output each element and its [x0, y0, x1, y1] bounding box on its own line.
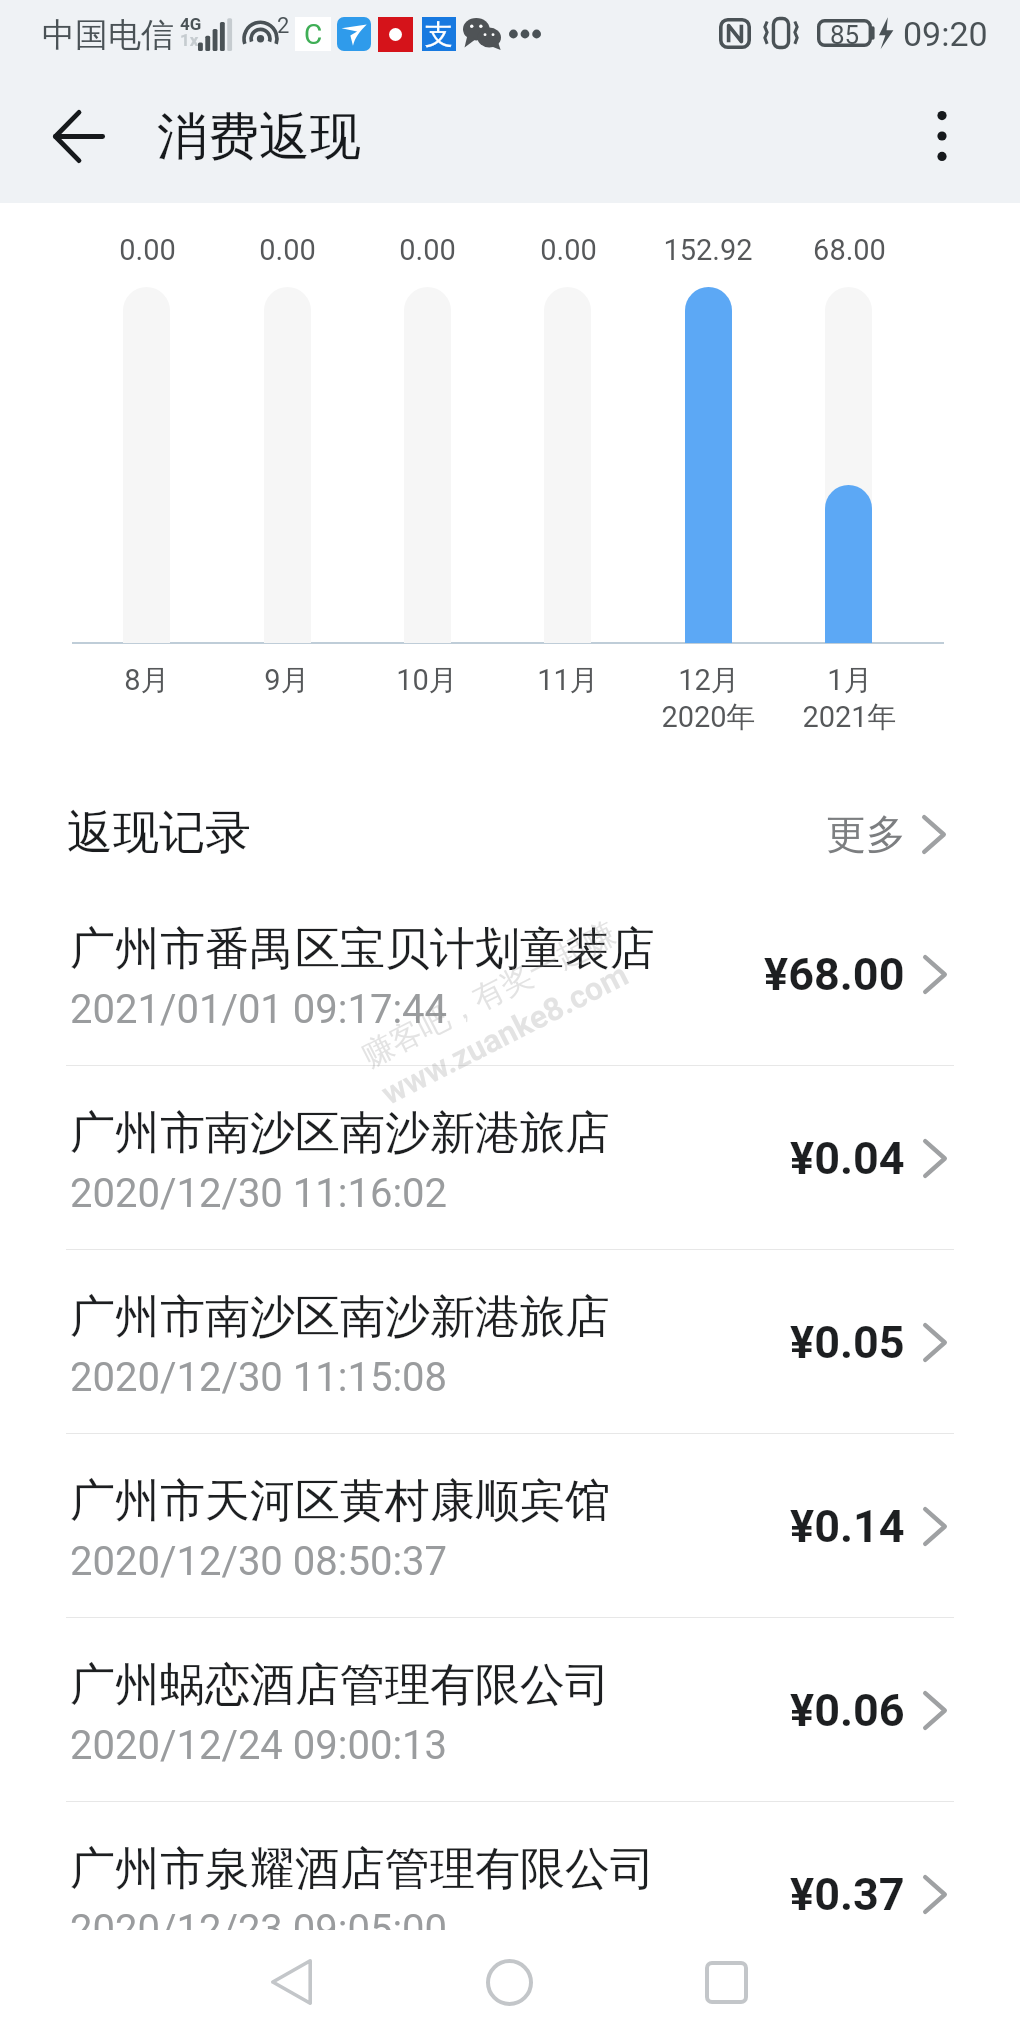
button[interactable]: 最近任务: [617, 1930, 835, 2040]
staticText: 2021年: [802, 699, 897, 736]
staticText: 0.00: [540, 233, 597, 267]
button[interactable]: 返回: [182, 1930, 400, 2040]
staticText: 10月: [396, 662, 458, 699]
staticText: 更多: [826, 809, 906, 859]
staticText: ¥68.00: [764, 948, 905, 1001]
button[interactable]: 返现记录: [0, 762, 1020, 882]
staticText: ¥0.14: [790, 1500, 905, 1553]
staticText: 广州市天河区黄村康顺宾馆: [70, 1473, 610, 1530]
button[interactable]: 广州市番禺区宝贝计划童装店: [0, 882, 1020, 1066]
button[interactable]: 广州市南沙区南沙新港旅店: [0, 1066, 1020, 1250]
staticText: C: [304, 18, 323, 51]
staticText: 1月: [827, 662, 873, 699]
staticText: 12月: [678, 662, 740, 699]
button[interactable]: 更多选项: [894, 86, 990, 182]
staticText: ¥0.06: [790, 1684, 905, 1737]
staticText: 广州蜗恋酒店管理有限公司: [70, 1657, 610, 1714]
staticText: 0.00: [259, 233, 316, 267]
staticText: 2021/01/01 09:17:44: [70, 986, 448, 1033]
staticText: 2020/12/30 11:15:08: [70, 1354, 448, 1401]
staticText: 支: [425, 17, 453, 51]
staticText: ¥0.37: [790, 1868, 905, 1921]
staticText: 广州市泉耀酒店管理有限公司: [70, 1841, 655, 1898]
staticText: 中国电信: [42, 14, 174, 56]
button[interactable]: 返回: [24, 79, 134, 189]
staticText: 11月: [537, 662, 599, 699]
staticText: 152.92: [663, 233, 753, 267]
button[interactable]: 主屏幕: [400, 1930, 618, 2040]
staticText: 9月: [264, 662, 310, 699]
staticText: 2: [277, 13, 290, 39]
staticText: 赚客吧，有奖一起赚: [356, 914, 622, 1075]
staticText: 68.00: [813, 233, 886, 267]
staticText: 8月: [124, 662, 170, 699]
staticText: 返现记录: [67, 804, 251, 862]
staticText: 09:20: [903, 14, 988, 54]
button[interactable]: 广州市泉耀酒店管理有限公司: [0, 1802, 1020, 1986]
staticText: 2020/12/30 11:16:02: [70, 1170, 448, 1217]
staticText: ¥0.05: [790, 1316, 905, 1369]
button[interactable]: 广州市天河区黄村康顺宾馆: [0, 1434, 1020, 1618]
staticText: 消费返现: [157, 105, 361, 169]
staticText: 2020/12/24 09:00:13: [70, 1722, 448, 1769]
staticText: www.zuanke8.com: [375, 955, 635, 1112]
staticText: 广州市番禺区宝贝计划童装店: [70, 921, 655, 978]
staticText: 2020年: [661, 699, 756, 736]
staticText: 85: [830, 20, 860, 48]
staticText: 4G: [180, 14, 202, 34]
staticText: 0.00: [399, 233, 456, 267]
staticText: 1x: [180, 30, 199, 50]
button[interactable]: 广州蜗恋酒店管理有限公司: [0, 1618, 1020, 1802]
button[interactable]: 广州市南沙区南沙新港旅店: [0, 1250, 1020, 1434]
staticText: 广州市南沙区南沙新港旅店: [70, 1105, 610, 1162]
staticText: 2020/12/30 08:50:37: [70, 1538, 448, 1585]
staticText: ¥0.04: [790, 1132, 905, 1185]
staticText: 广州市南沙区南沙新港旅店: [70, 1289, 610, 1346]
staticText: 0.00: [119, 233, 176, 267]
staticText: 2020/12/23 09:05:00: [70, 1906, 448, 1953]
